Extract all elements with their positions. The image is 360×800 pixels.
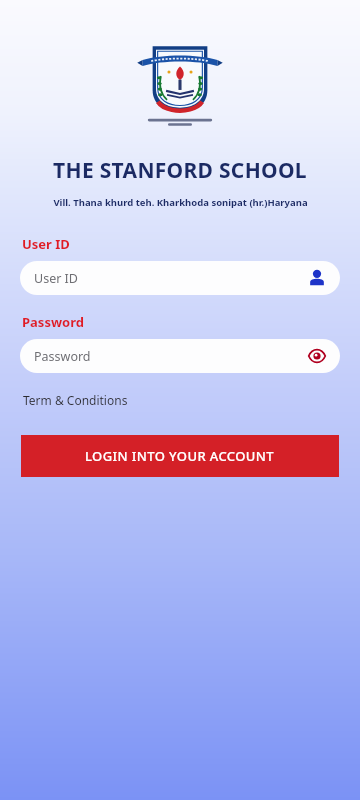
button[interactable]: Term & Conditions bbox=[22, 389, 129, 411]
staticText: Password bbox=[22, 313, 84, 331]
button[interactable]: LOGIN INTO YOUR ACCOUNT bbox=[21, 435, 339, 477]
other: User ID bbox=[308, 269, 326, 287]
button[interactable]: Password bbox=[20, 339, 340, 373]
staticText: User ID bbox=[34, 270, 308, 287]
staticText: Vill. Thana khurd teh. Kharkhoda sonipat… bbox=[53, 196, 308, 209]
button[interactable]: User ID bbox=[20, 261, 340, 295]
staticText: LOGIN INTO YOUR ACCOUNT bbox=[85, 447, 275, 465]
staticText: Term & Conditions bbox=[23, 392, 128, 408]
staticText: THE STANFORD SCHOOL bbox=[53, 156, 307, 185]
staticText: Password bbox=[34, 348, 308, 365]
other: Show password bbox=[308, 347, 326, 365]
staticText: User ID bbox=[22, 235, 70, 253]
